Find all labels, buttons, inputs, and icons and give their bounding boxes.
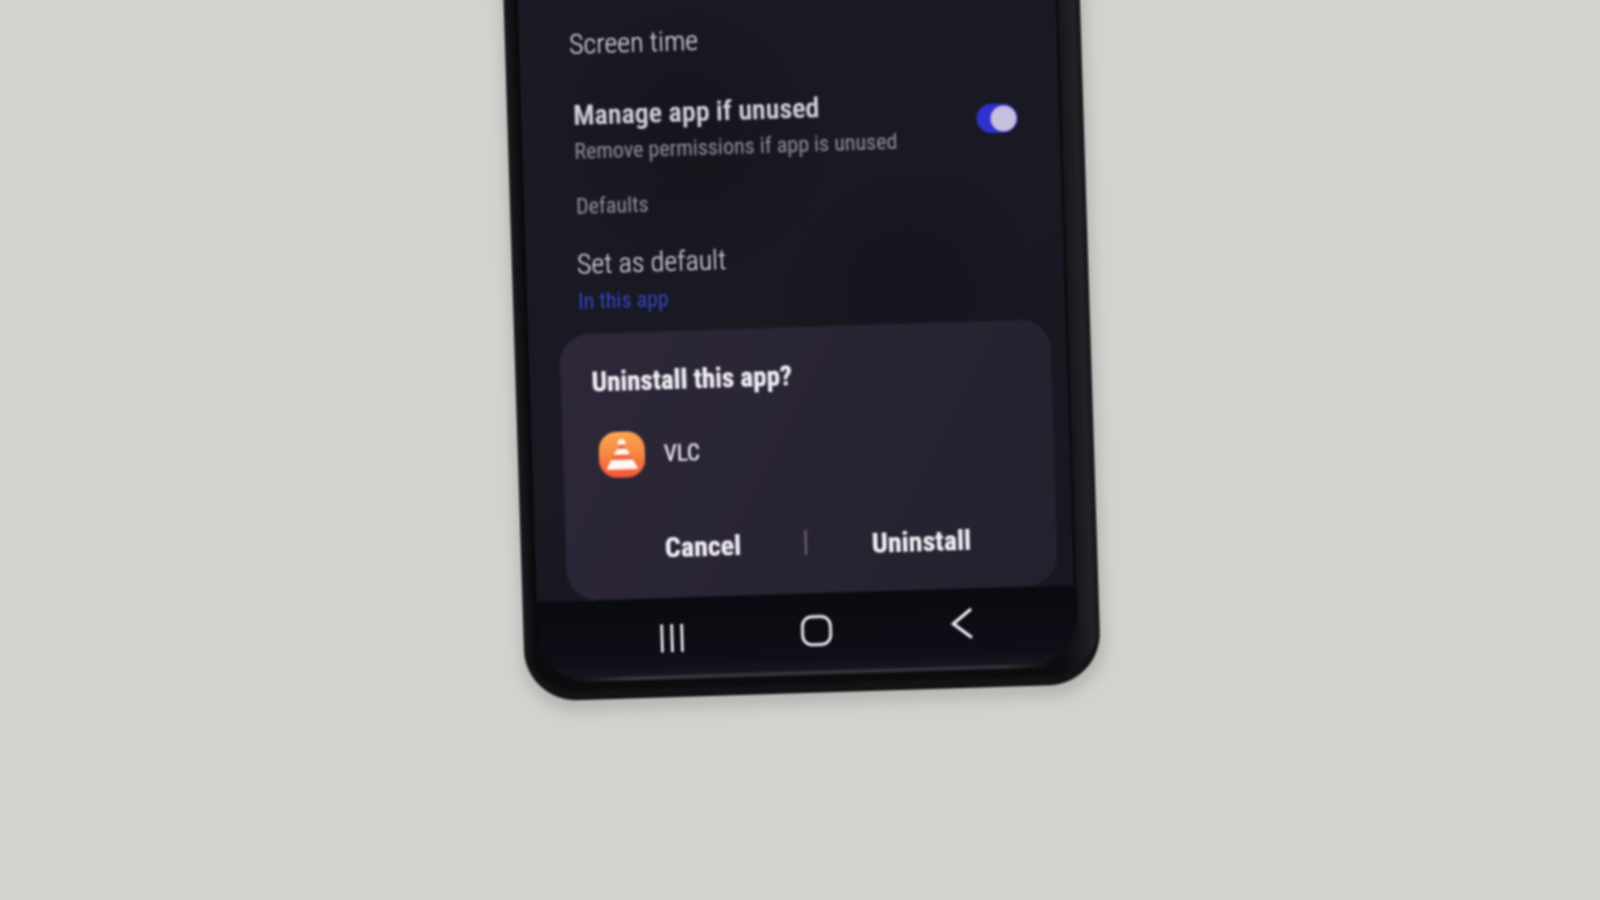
staticText: Uninstall <box>871 524 972 560</box>
button[interactable]: Home <box>769 596 863 665</box>
staticText: Storage <box>587 583 675 619</box>
staticText: Defaults <box>576 192 649 220</box>
staticText: Remove permissions if app is unused <box>574 129 899 165</box>
staticText: VLC <box>663 439 701 467</box>
staticText: 13.64 MB used in internal storage <box>588 611 881 646</box>
button[interactable]: Cancel <box>635 515 771 577</box>
button[interactable]: Manage app if unused toggle <box>976 103 1018 133</box>
button[interactable]: Recent apps <box>625 604 719 673</box>
button[interactable]: Uninstall <box>851 510 993 572</box>
staticText: In this app <box>578 286 669 315</box>
button[interactable]: Manage app if unused <box>521 82 1061 179</box>
button[interactable]: Set as default <box>525 233 1065 317</box>
staticText: Screen time <box>568 24 699 61</box>
staticText: Set as default <box>576 243 727 281</box>
button[interactable]: Back <box>914 589 1008 657</box>
staticText: Uninstall this app? <box>591 360 793 399</box>
staticText: Manage app if unused <box>573 91 821 132</box>
staticText: Cancel <box>664 529 742 564</box>
